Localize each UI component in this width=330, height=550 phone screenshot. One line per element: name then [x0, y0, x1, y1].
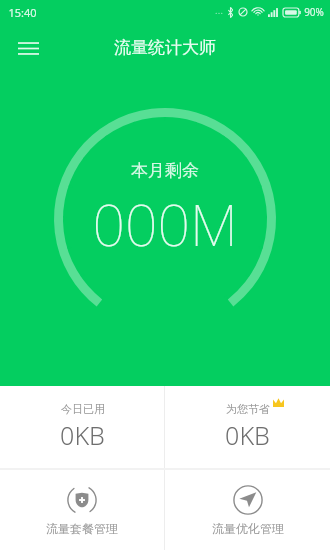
staticText: 流量统计大师: [114, 37, 216, 58]
button[interactable]: 流量优化管理: [165, 470, 330, 550]
staticText: 0KB: [60, 418, 105, 452]
button[interactable]: Menu: [6, 26, 50, 70]
staticText: 流量套餐管理: [46, 521, 118, 536]
staticText: 0KB: [225, 418, 270, 452]
staticText: 为您节省: [226, 402, 270, 416]
button[interactable]: 流量套餐管理: [0, 470, 164, 550]
button[interactable]: 为您节省: [165, 386, 330, 468]
staticText: 90%: [304, 5, 324, 19]
staticText: 15:40: [8, 5, 37, 20]
button[interactable]: 今日已用: [0, 386, 164, 468]
staticText: 今日已用: [61, 402, 105, 416]
staticText: 流量优化管理: [212, 521, 284, 536]
staticText: 000M: [92, 185, 238, 263]
staticText: 本月剩余: [131, 160, 199, 181]
